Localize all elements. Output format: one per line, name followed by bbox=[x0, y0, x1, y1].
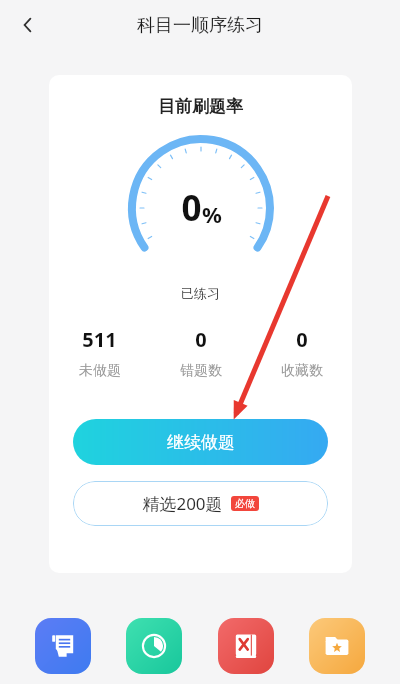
staticText: 0 bbox=[195, 326, 207, 353]
button[interactable]: 精选200题 bbox=[73, 481, 328, 526]
staticText: 科目一顺序练习 bbox=[137, 14, 263, 37]
button[interactable]: 模拟考试 bbox=[35, 618, 91, 674]
staticText: 未做题 bbox=[79, 362, 121, 380]
button[interactable]: 0 bbox=[150, 326, 251, 380]
staticText: 0 bbox=[296, 326, 308, 353]
staticText: 收藏数 bbox=[281, 362, 323, 380]
staticText: 精选200题 bbox=[142, 492, 223, 515]
button[interactable]: Back bbox=[8, 5, 48, 45]
button[interactable]: 错题本 bbox=[218, 618, 274, 674]
staticText: % bbox=[202, 199, 222, 229]
staticText: 目前刷题率 bbox=[158, 96, 243, 117]
button[interactable]: 计时练习 bbox=[126, 618, 182, 674]
staticText: 已练习 bbox=[181, 285, 220, 301]
staticText: 0 bbox=[181, 184, 202, 232]
staticText: 错题数 bbox=[180, 362, 222, 380]
button[interactable]: 继续做题 bbox=[73, 419, 328, 465]
staticText: 继续做题 bbox=[167, 432, 235, 453]
staticText: 511 bbox=[82, 326, 117, 353]
button[interactable]: 511 bbox=[49, 326, 150, 380]
button[interactable]: 0 bbox=[251, 326, 352, 380]
button[interactable]: 收藏夹 bbox=[309, 618, 365, 674]
staticText: 必做 bbox=[235, 497, 255, 510]
